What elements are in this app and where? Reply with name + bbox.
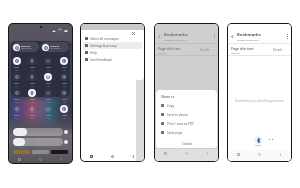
staticText: Bookmarks you add will appear here bbox=[235, 99, 284, 103]
button[interactable]: Wi-Fi bbox=[24, 73, 40, 88]
button[interactable]: Page title text bbox=[231, 44, 287, 55]
button[interactable]: Wi-Fi bbox=[9, 57, 24, 72]
staticText: Print / save as PDF bbox=[167, 122, 194, 126]
button[interactable] bbox=[254, 136, 262, 146]
button[interactable]: Send to device bbox=[161, 110, 213, 119]
button[interactable]: Recents bbox=[81, 152, 102, 160]
button[interactable]: Back bbox=[123, 152, 144, 160]
button[interactable]: Home bbox=[30, 155, 51, 163]
staticText: Bookmarks bbox=[164, 32, 188, 38]
button[interactable]: Wi-Fi bbox=[56, 57, 72, 72]
staticText: site.org bbox=[158, 51, 167, 54]
staticText: On bbox=[63, 117, 66, 120]
staticText: On bbox=[15, 101, 18, 104]
button[interactable]: Home bbox=[249, 150, 270, 158]
button[interactable]: Back bbox=[197, 149, 218, 157]
staticText: Help bbox=[90, 51, 97, 55]
staticText: Send to device bbox=[167, 113, 189, 117]
button[interactable]: Recents bbox=[155, 149, 176, 157]
staticText: Wi-Fi bbox=[30, 82, 35, 85]
button[interactable]: Copy bbox=[161, 101, 213, 110]
staticText: Page title text bbox=[158, 46, 181, 51]
button[interactable]: Wi-Fi bbox=[9, 105, 24, 120]
staticText: Wi-Fi bbox=[14, 98, 19, 101]
button[interactable]: Recents bbox=[228, 150, 249, 158]
staticText: Details bbox=[273, 48, 282, 52]
button[interactable]: Wi-Fi bbox=[24, 89, 40, 104]
staticText: Wi-Fi bbox=[14, 114, 19, 117]
staticText: Connected bbox=[21, 47, 32, 50]
staticText: Page title text bbox=[231, 46, 254, 51]
staticText: Wi-Fi bbox=[14, 66, 19, 69]
staticText: Wi-Fi bbox=[46, 66, 51, 69]
button[interactable]: Wi-Fi bbox=[40, 73, 56, 88]
button[interactable]: Page title text bbox=[158, 44, 214, 55]
staticText: Wi-Fi bbox=[30, 98, 35, 101]
button[interactable]: Internet bbox=[12, 42, 39, 52]
staticText: On bbox=[63, 101, 66, 104]
button[interactable]: Back bbox=[270, 150, 291, 158]
staticText: On bbox=[63, 69, 66, 72]
staticText: On bbox=[31, 69, 34, 72]
button[interactable]: Back bbox=[157, 34, 162, 39]
staticText: On bbox=[15, 69, 18, 72]
button[interactable]: Wi-Fi bbox=[56, 73, 72, 88]
button[interactable]: Internet bbox=[41, 42, 69, 52]
button[interactable]: Help bbox=[83, 49, 142, 56]
button[interactable]: Settings & privacy bbox=[83, 42, 142, 49]
button[interactable]: Wi-Fi bbox=[40, 105, 56, 120]
button[interactable] bbox=[13, 138, 63, 146]
staticText: Connected bbox=[50, 47, 61, 50]
button[interactable]: Wi-Fi bbox=[56, 89, 72, 104]
staticText: Wi-Fi bbox=[30, 114, 35, 117]
staticText: Wi-Fi bbox=[62, 82, 67, 85]
staticText: On bbox=[63, 85, 66, 88]
button[interactable]: Wi-Fi bbox=[9, 73, 24, 88]
staticText: On bbox=[31, 101, 34, 104]
button[interactable]: Home bbox=[102, 152, 123, 160]
button[interactable]: Print / save as PDF bbox=[161, 119, 213, 128]
staticText: site.org bbox=[231, 51, 240, 54]
button[interactable]: Home bbox=[176, 149, 197, 157]
staticText: Wi-Fi bbox=[46, 98, 51, 101]
staticText: Select all messages bbox=[90, 37, 119, 41]
button[interactable]: Send feedback bbox=[83, 56, 142, 63]
button[interactable] bbox=[13, 128, 63, 136]
staticText: Internet bbox=[50, 44, 60, 47]
staticText: Share to bbox=[161, 94, 175, 99]
button[interactable]: Wi-Fi bbox=[40, 89, 56, 104]
button[interactable]: Wi-Fi bbox=[9, 89, 24, 104]
button[interactable]: Wi-Fi bbox=[24, 105, 40, 120]
button[interactable]: Back bbox=[51, 155, 72, 163]
button[interactable]: Cancel bbox=[161, 139, 213, 148]
staticText: Cancel bbox=[182, 142, 192, 146]
staticText: On bbox=[47, 69, 50, 72]
staticText: Bookmarks bbox=[237, 32, 261, 38]
staticText: Internet bbox=[21, 44, 31, 47]
staticText: Wi-Fi bbox=[14, 82, 19, 85]
button[interactable]: More options bbox=[214, 34, 215, 39]
staticText: Copy bbox=[167, 104, 175, 108]
button[interactable]: Wi-Fi bbox=[40, 57, 56, 72]
staticText: On bbox=[47, 117, 50, 120]
staticText: On bbox=[31, 85, 34, 88]
staticText: Wi-Fi bbox=[46, 114, 51, 117]
staticText: On bbox=[31, 117, 34, 120]
staticText: Mobile bookmarks bbox=[237, 38, 259, 41]
staticText: Wi-Fi bbox=[30, 66, 35, 69]
button[interactable]: Send page bbox=[161, 128, 213, 137]
button[interactable]: More options bbox=[287, 34, 288, 39]
staticText: On bbox=[15, 85, 18, 88]
staticText: Wi-Fi bbox=[62, 114, 67, 117]
button[interactable]: More bbox=[268, 139, 274, 140]
staticText: On bbox=[47, 85, 50, 88]
button[interactable]: Wi-Fi bbox=[24, 57, 40, 72]
button[interactable]: Recents bbox=[9, 155, 30, 163]
button[interactable]: Wi-Fi bbox=[56, 105, 72, 120]
button[interactable]: Select all messages bbox=[83, 35, 142, 42]
staticText: Send page bbox=[167, 131, 183, 135]
staticText: Wi-Fi bbox=[46, 82, 51, 85]
button[interactable]: Back bbox=[230, 34, 235, 39]
staticText: Mobile bookmarks bbox=[164, 38, 186, 41]
staticText: On bbox=[47, 101, 50, 104]
